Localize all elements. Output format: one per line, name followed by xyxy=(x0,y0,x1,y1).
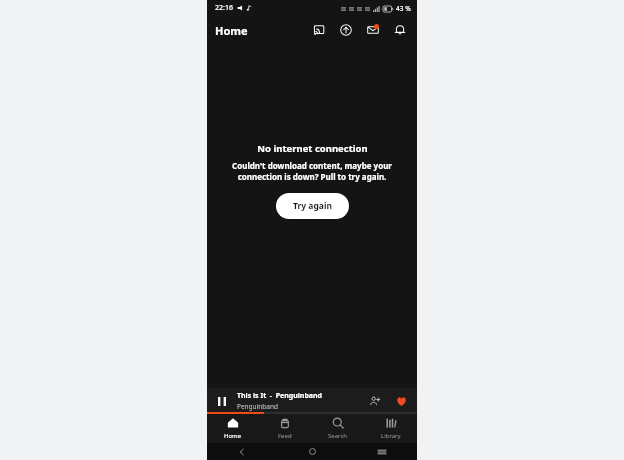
button[interactable]: Like xyxy=(393,393,409,409)
staticText: 22:16 xyxy=(215,3,233,13)
staticText: 43 % xyxy=(396,4,411,13)
staticText: Home xyxy=(215,23,248,38)
button[interactable]: Back xyxy=(207,443,277,460)
button[interactable]: Messages xyxy=(364,21,382,39)
button[interactable]: Follow artist xyxy=(367,393,383,409)
staticText: Feed xyxy=(278,432,292,440)
staticText: Try again xyxy=(293,200,332,212)
button[interactable]: Search xyxy=(311,414,364,443)
staticText: Home xyxy=(224,432,242,440)
staticText: This is It - Penguinband xyxy=(237,391,323,401)
staticText: Library xyxy=(381,432,401,440)
button[interactable]: Home xyxy=(277,443,347,460)
staticText: Penguinband xyxy=(237,402,278,411)
button[interactable]: Recent apps xyxy=(347,443,417,460)
staticText: No internet connection xyxy=(257,142,368,155)
button[interactable]: Pause xyxy=(207,388,417,414)
button[interactable]: Notifications xyxy=(391,21,409,39)
button[interactable]: Upload xyxy=(337,21,355,39)
button[interactable]: Cast xyxy=(310,21,328,39)
staticText: Search xyxy=(328,432,347,440)
button[interactable]: Pause xyxy=(214,393,230,409)
button[interactable]: Try again xyxy=(276,193,349,219)
staticText: Couldn't download content, maybe your co… xyxy=(213,160,411,182)
button[interactable]: Library xyxy=(364,414,417,443)
button[interactable]: Feed xyxy=(259,414,311,443)
button[interactable]: Home xyxy=(207,414,259,443)
